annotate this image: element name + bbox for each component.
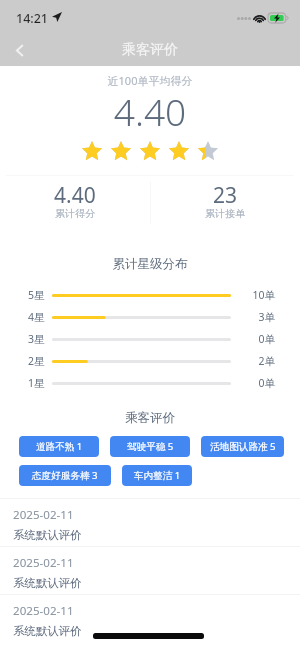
staticText: 23: [213, 181, 238, 210]
button[interactable]: 2025-02-11: [0, 594, 300, 642]
button[interactable]: 态度好服务棒 3: [19, 465, 111, 486]
staticText: 车内整洁 1: [134, 469, 181, 482]
button[interactable]: 返回: [0, 31, 38, 69]
staticText: 驾驶平稳 5: [127, 440, 174, 453]
staticText: 乘客评价: [0, 41, 300, 59]
staticText: 14:21: [16, 10, 49, 27]
staticText: 累计星级分布: [0, 256, 300, 272]
staticText: 3星: [28, 332, 52, 346]
staticText: 2025-02-11: [13, 507, 74, 523]
staticText: 5星: [28, 288, 52, 302]
staticText: 近100单平均得分: [0, 73, 300, 88]
staticText: 0单: [231, 332, 275, 346]
staticText: 10单: [231, 288, 275, 302]
staticText: 道路不熟 1: [36, 440, 83, 453]
staticText: 2单: [231, 354, 275, 368]
staticText: 4.40: [54, 181, 96, 210]
staticText: 0单: [231, 376, 275, 390]
staticText: 系统默认评价: [13, 528, 82, 542]
staticText: 1星: [28, 376, 52, 390]
staticText: 系统默认评价: [13, 624, 82, 638]
button[interactable]: 4.40: [0, 179, 149, 221]
staticText: 4.40: [0, 86, 300, 136]
staticText: 2星: [28, 354, 52, 368]
button[interactable]: 道路不熟 1: [19, 436, 99, 457]
staticText: 活地图认路准 5: [210, 440, 276, 453]
staticText: 3单: [231, 310, 275, 324]
staticText: 2025-02-11: [13, 555, 74, 571]
staticText: 2025-02-11: [13, 603, 74, 619]
button[interactable]: 2025-02-11: [0, 546, 300, 594]
staticText: 累计得分: [55, 207, 95, 220]
staticText: 态度好服务棒 3: [32, 469, 98, 482]
staticText: 系统默认评价: [13, 576, 82, 590]
button[interactable]: 驾驶平稳 5: [110, 436, 190, 457]
button[interactable]: 活地图认路准 5: [201, 436, 284, 457]
staticText: 4星: [28, 310, 52, 324]
button[interactable]: 车内整洁 1: [122, 465, 192, 486]
button[interactable]: 2025-02-11: [0, 498, 300, 546]
staticText: 乘客评价: [0, 410, 300, 426]
button[interactable]: 23: [150, 179, 300, 221]
staticText: 累计接单: [205, 207, 245, 220]
